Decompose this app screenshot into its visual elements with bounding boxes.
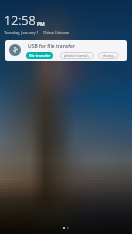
staticText: USB for file transfer	[28, 43, 76, 50]
staticText: Tuesday, January 1	[4, 30, 39, 35]
staticText: file transfer	[29, 53, 51, 58]
button[interactable]: file transfer	[26, 52, 53, 59]
staticText: charg...	[102, 53, 116, 58]
button[interactable]: photo transf...	[60, 52, 94, 59]
other: Page indicator	[63, 227, 69, 229]
staticText: photo transf...	[64, 53, 91, 58]
button[interactable]: charg...	[98, 52, 119, 59]
staticText: 12:58	[4, 12, 36, 29]
staticText: PM	[37, 21, 45, 28]
button[interactable]: USB for file transfer	[5, 40, 127, 61]
staticText: China Unicom	[43, 30, 70, 35]
